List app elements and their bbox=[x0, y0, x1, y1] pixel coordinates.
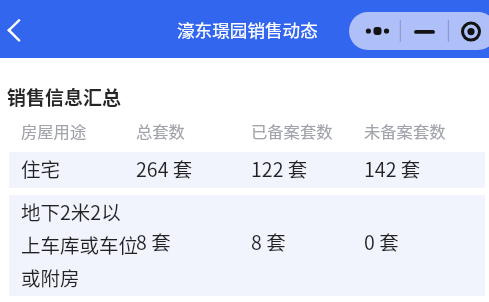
staticText: 122 套 bbox=[251, 154, 308, 182]
staticText: 房屋用途 bbox=[21, 119, 87, 143]
button[interactable] bbox=[9, 195, 485, 296]
staticText: 濠东璟园销售动态 bbox=[177, 17, 318, 42]
button[interactable] bbox=[9, 152, 485, 188]
staticText: 或附房 bbox=[21, 263, 80, 291]
staticText: 0 套 bbox=[364, 227, 399, 255]
staticText: 住宅 bbox=[21, 154, 61, 182]
button[interactable]: More options bbox=[349, 12, 489, 50]
staticText: 已备案套数 bbox=[251, 119, 333, 143]
staticText: 地下2米2以 bbox=[21, 197, 121, 225]
staticText: 上车库或车位 bbox=[21, 230, 139, 258]
staticText: 264 套 bbox=[136, 154, 193, 182]
staticText: 未备案套数 bbox=[364, 119, 446, 143]
staticText: 142 套 bbox=[364, 154, 421, 182]
staticText: 8 套 bbox=[251, 227, 286, 255]
button[interactable]: Back bbox=[0, 8, 30, 50]
staticText: 销售信息汇总 bbox=[7, 83, 122, 111]
staticText: 总套数 bbox=[136, 119, 185, 143]
staticText: 8 套 bbox=[136, 227, 171, 255]
